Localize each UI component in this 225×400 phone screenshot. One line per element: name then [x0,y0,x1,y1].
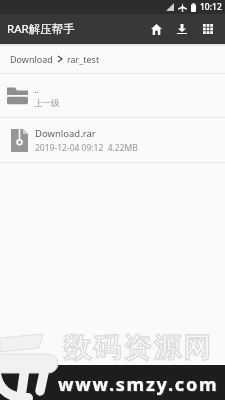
staticText: 数码资源网 [62,331,212,365]
button[interactable] [170,17,194,41]
button[interactable]: Download.rar [0,118,225,162]
staticText: 10:12 [200,1,222,13]
button[interactable] [196,17,220,41]
staticText: Download.rar [35,127,96,140]
staticText: 上一级 [34,98,60,109]
staticText: www.smzy.com [58,372,219,397]
staticText: RAR解压帮手 [7,21,75,37]
staticText: .. [34,83,40,96]
button[interactable]: Download [0,44,225,73]
button[interactable]: .. [0,74,225,117]
staticText: 2019-12-04 09:12 4.22MB [35,142,138,154]
staticText: www.smzy.com [59,373,220,398]
staticText: Download [10,53,53,65]
staticText: rar_test [67,53,100,65]
button[interactable] [144,17,168,41]
